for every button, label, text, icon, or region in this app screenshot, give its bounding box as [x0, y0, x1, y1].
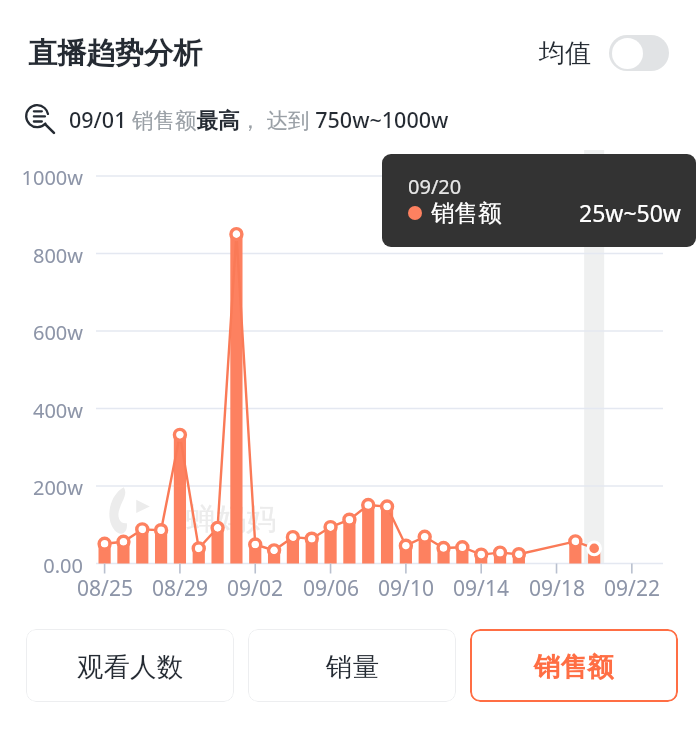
- other: Insights: [22, 101, 60, 139]
- other: Toggle average value: [609, 35, 669, 71]
- button[interactable]: 均值: [539, 35, 669, 71]
- staticText: 销售额: [431, 198, 502, 228]
- staticText: 观看人数: [77, 650, 183, 683]
- staticText: 09/14: [453, 574, 509, 603]
- staticText: 08/29: [152, 574, 208, 603]
- button[interactable]: 销量: [248, 629, 456, 702]
- staticText: 09/10: [378, 574, 434, 603]
- button[interactable]: 观看人数: [26, 629, 234, 702]
- staticText: 25w~50w: [579, 197, 681, 228]
- staticText: 0.00: [43, 552, 83, 579]
- staticText: 09/06: [303, 574, 359, 603]
- staticText: 200w: [32, 474, 83, 501]
- staticText: 09/01 销售额最高， 达到 750w~1000w: [69, 105, 449, 134]
- staticText: 09/22: [604, 574, 660, 603]
- staticText: 800w: [32, 242, 83, 269]
- staticText: 08/25: [77, 574, 133, 603]
- staticText: 09/18: [529, 574, 585, 603]
- staticText: 销售额: [534, 650, 614, 683]
- staticText: 09/20: [408, 173, 462, 200]
- button[interactable]: 销售额: [470, 629, 678, 702]
- staticText: 09/02: [227, 574, 283, 603]
- staticText: 1000w: [21, 164, 83, 191]
- staticText: 蝉妈妈: [186, 500, 276, 538]
- staticText: 600w: [32, 319, 83, 346]
- staticText: 均值: [539, 37, 591, 70]
- staticText: 直播趋势分析: [28, 35, 202, 72]
- staticText: 400w: [32, 397, 83, 424]
- staticText: 销量: [326, 650, 379, 683]
